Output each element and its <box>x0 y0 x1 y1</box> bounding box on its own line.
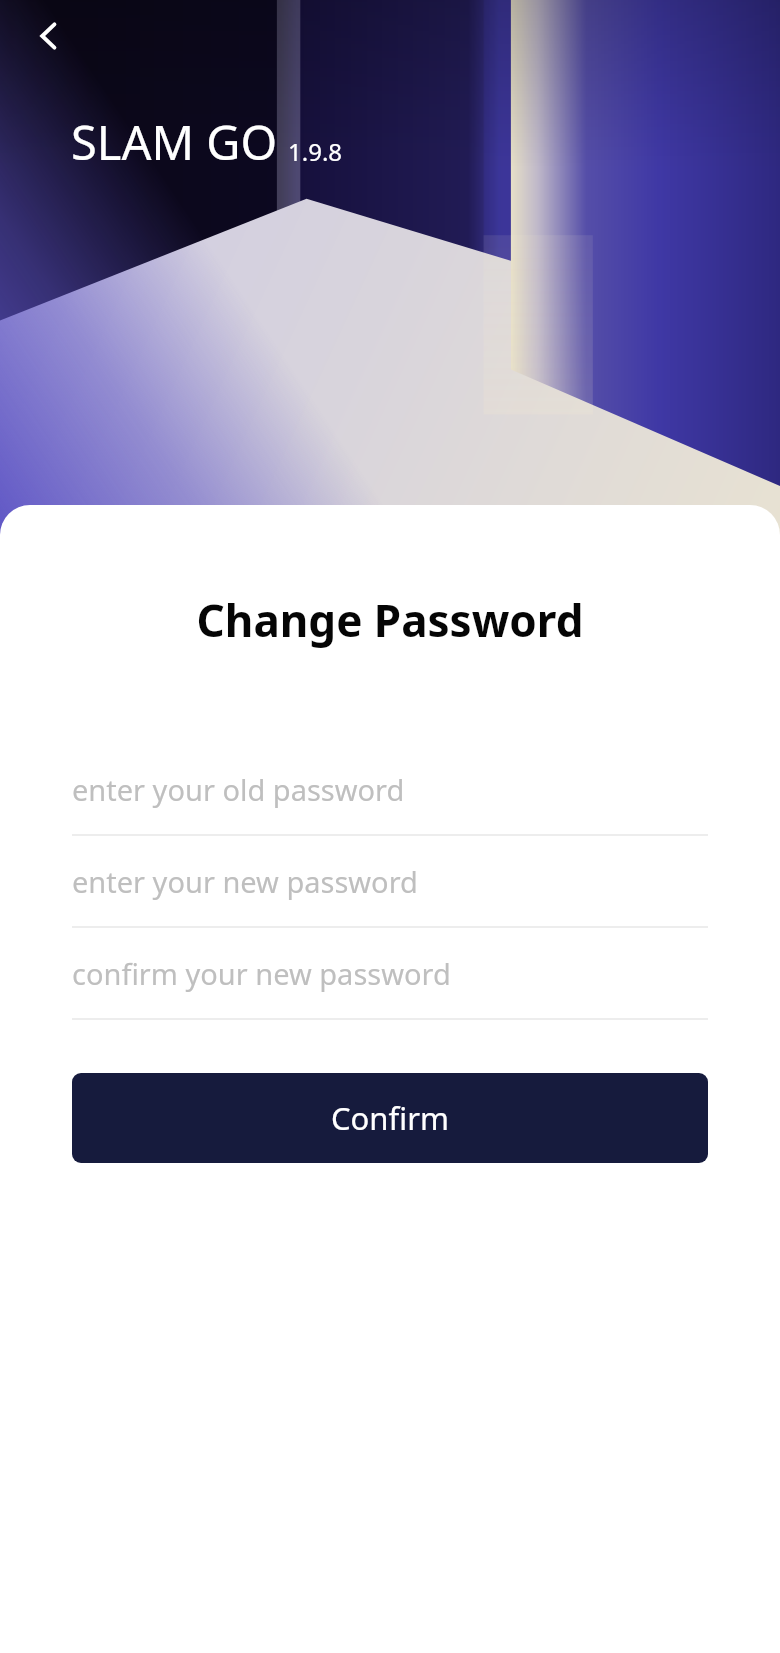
staticText: enter your old password <box>72 770 405 809</box>
staticText: Confirm <box>331 1097 449 1139</box>
button[interactable]: confirm your new password <box>72 928 708 1020</box>
button[interactable]: Back <box>14 1 84 71</box>
staticText: 1.9.8 <box>288 135 343 168</box>
staticText: confirm your new password <box>72 954 451 993</box>
button[interactable]: Confirm <box>72 1073 708 1163</box>
button[interactable]: enter your old password <box>72 744 708 836</box>
staticText: enter your new password <box>72 862 418 901</box>
staticText: Change Password <box>0 590 780 650</box>
button[interactable]: enter your new password <box>72 836 708 928</box>
staticText: SLAM GO <box>71 110 278 174</box>
